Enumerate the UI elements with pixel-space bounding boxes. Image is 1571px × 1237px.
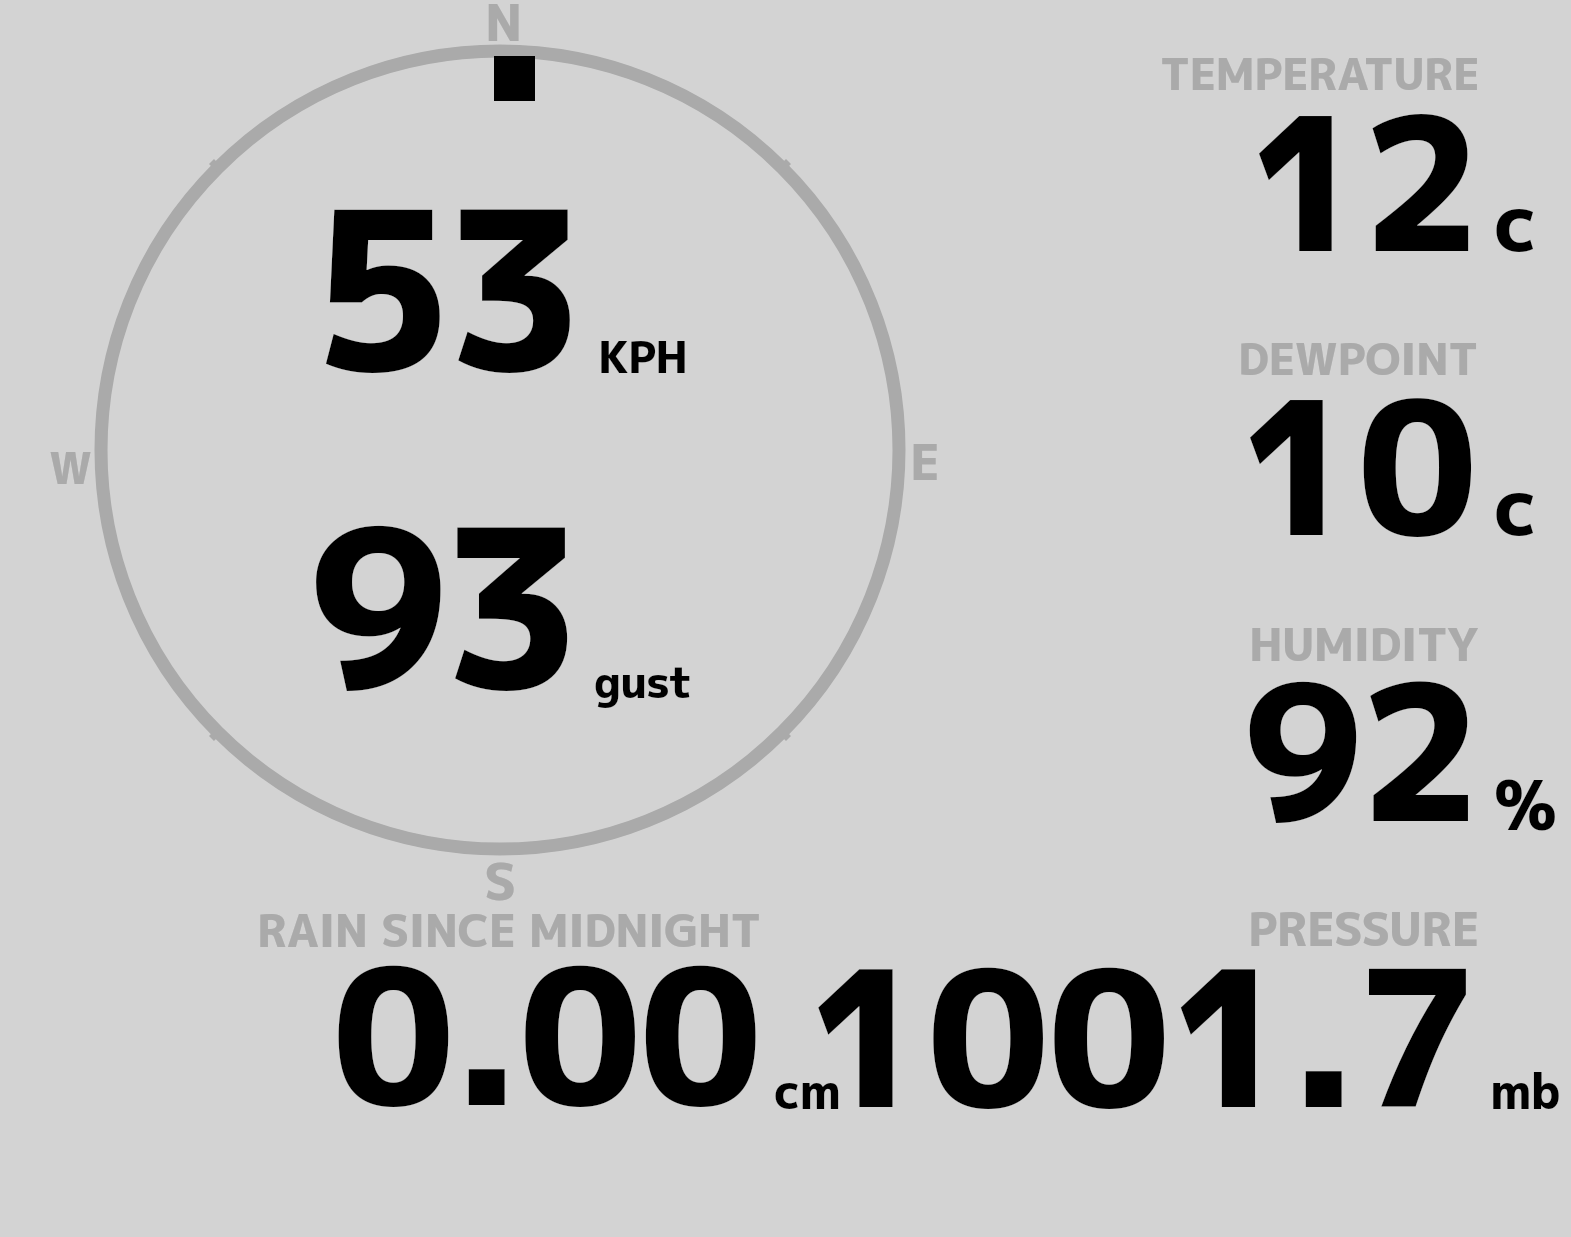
staticText: gust: [594, 651, 692, 712]
staticText: 92: [1242, 618, 1476, 882]
staticText: PRESSURE: [1248, 897, 1479, 961]
staticText: E: [910, 427, 940, 495]
other: Wind direction compass: [0, 0, 1571, 1237]
staticText: 93: [307, 451, 575, 759]
staticText: DEWPOINT: [1238, 328, 1478, 389]
staticText: mb: [1490, 1057, 1560, 1124]
staticText: 0.00: [332, 902, 760, 1166]
staticText: 10: [1238, 336, 1477, 594]
staticText: 53: [311, 134, 578, 441]
staticText: c: [1494, 166, 1538, 276]
staticText: RAIN SINCE MIDNIGHT: [257, 899, 761, 961]
staticText: KPH: [598, 326, 687, 387]
staticText: 12: [1247, 52, 1476, 310]
staticText: W: [49, 437, 93, 498]
staticText: c: [1494, 450, 1538, 560]
staticText: %: [1494, 758, 1557, 851]
staticText: S: [484, 845, 517, 916]
staticText: HUMIDITY: [1249, 612, 1479, 675]
staticText: 1001.7: [806, 904, 1477, 1168]
staticText: TEMPERATURE: [1160, 43, 1480, 104]
staticText: N: [485, 0, 523, 57]
staticText: cm: [774, 1057, 841, 1124]
